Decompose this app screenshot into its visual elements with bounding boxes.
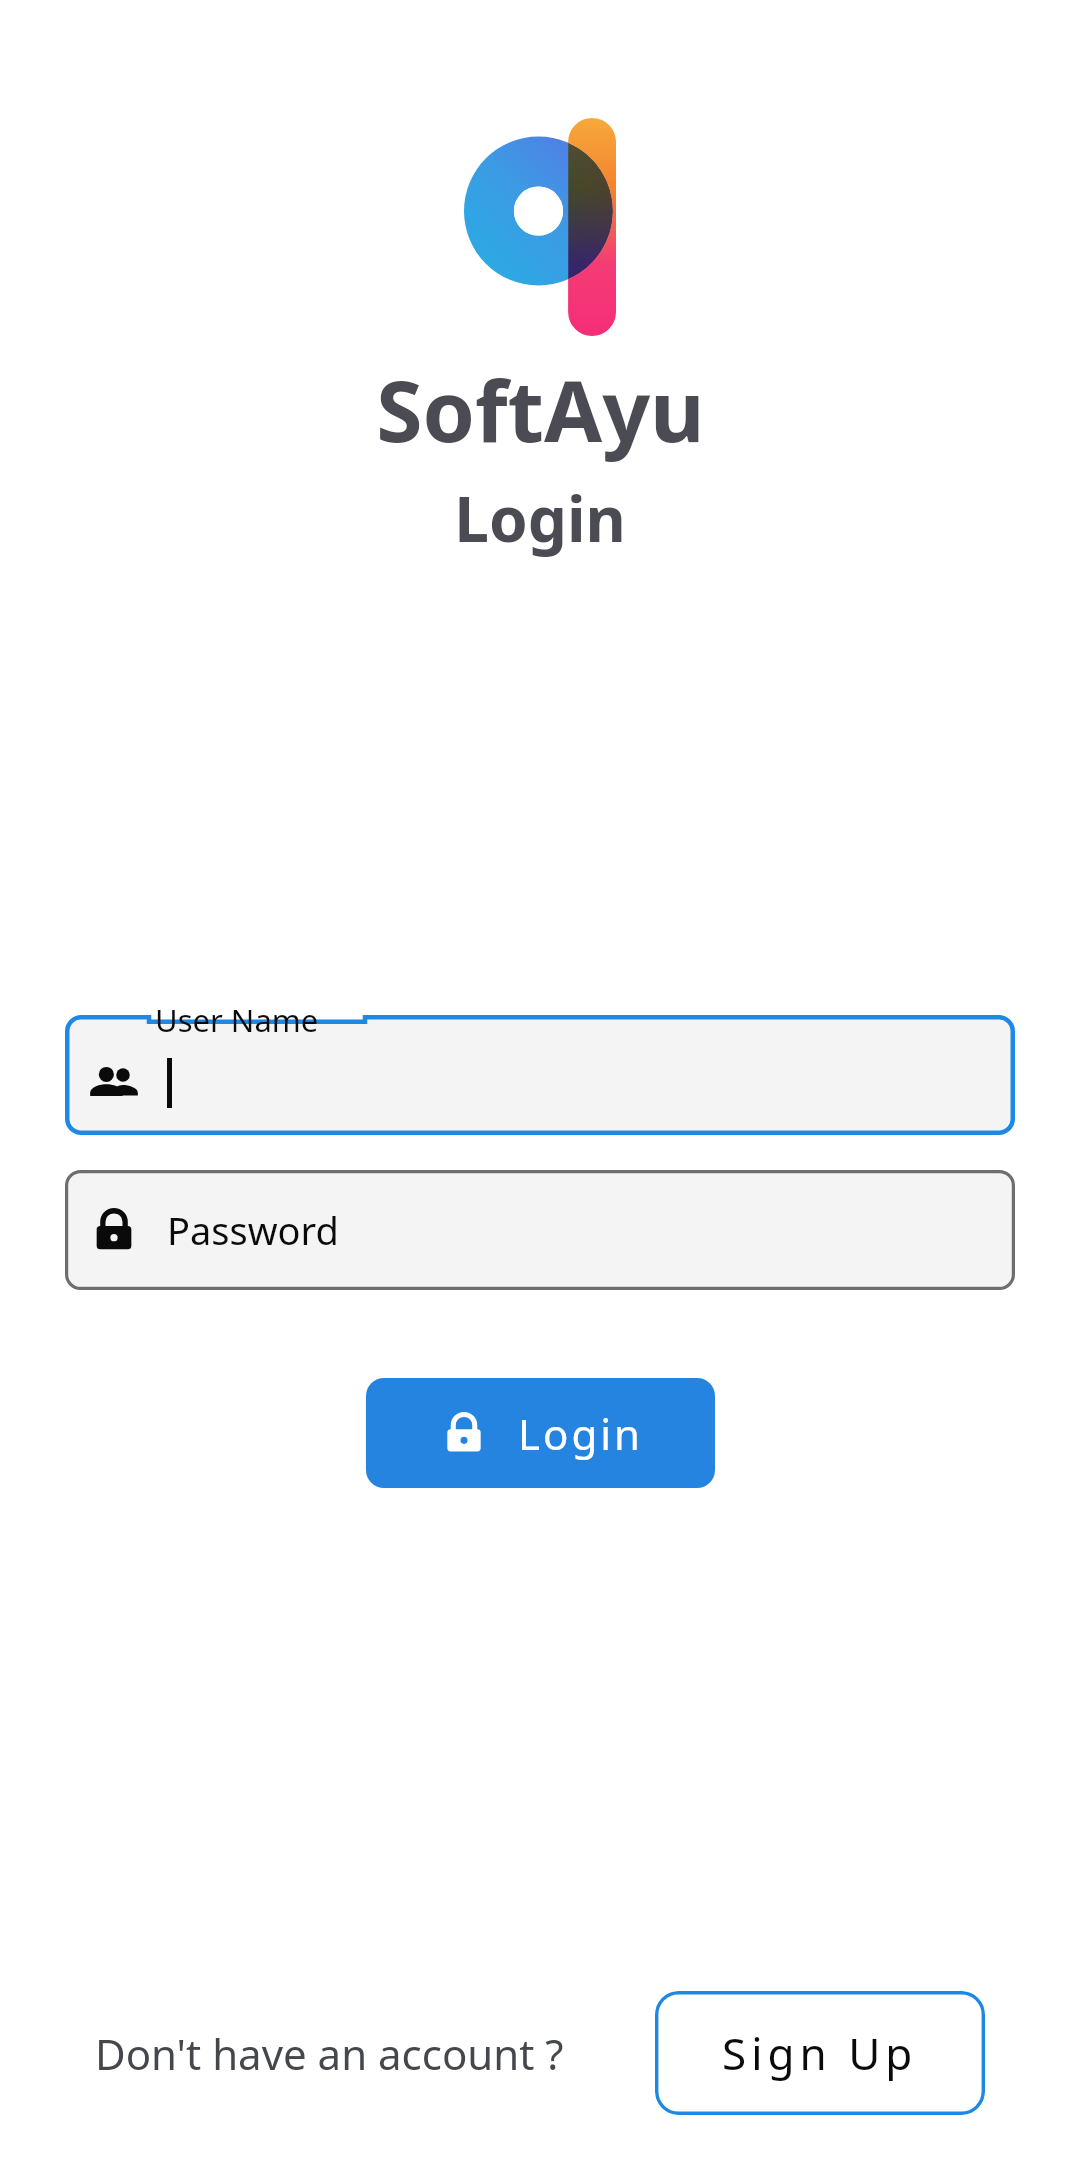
button[interactable]: Password (65, 1170, 1015, 1290)
button[interactable]: Login (366, 1378, 715, 1488)
button[interactable]: User Name (65, 1015, 1015, 1135)
staticText: Password (167, 1204, 339, 1256)
button[interactable]: Sign Up (655, 1991, 985, 2115)
staticText: SoftAyu (376, 352, 705, 466)
staticText: User Name (155, 999, 319, 1041)
staticText: Sign Up (722, 2023, 918, 2083)
button[interactable]: Don't have an account ? (95, 2025, 564, 2082)
staticText: Login (454, 476, 626, 560)
staticText: Login (518, 1405, 644, 1462)
